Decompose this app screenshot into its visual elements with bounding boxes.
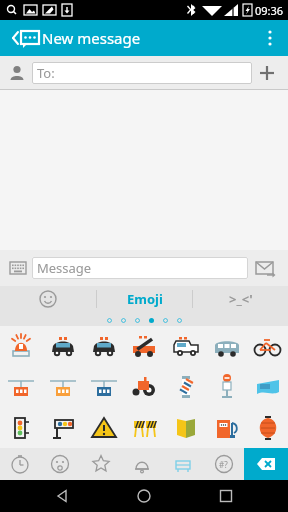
button[interactable]: Emoji 5 — [206, 326, 247, 366]
button[interactable]: Emoji — [97, 286, 192, 312]
button[interactable]: Recent — [0, 448, 40, 480]
button[interactable]: Symbols — [203, 448, 244, 480]
button[interactable]: Emoji 12 — [206, 366, 247, 407]
button[interactable]: Emoji 19 — [206, 407, 247, 448]
button[interactable]: Emoji 10 — [124, 366, 165, 407]
button[interactable]: More options — [252, 20, 288, 56]
button[interactable]: Recents — [206, 480, 246, 512]
button[interactable]: Delete — [244, 448, 288, 480]
button[interactable]: Emoji 14 — [0, 407, 42, 448]
button[interactable]: Home — [124, 480, 164, 512]
button[interactable]: Emoji 8 — [42, 366, 83, 407]
button[interactable]: Emoji 3 — [124, 326, 165, 366]
button[interactable]: Emoji 0 — [0, 326, 42, 366]
staticText: New message — [42, 28, 141, 48]
button[interactable]: Emoji 16 — [83, 407, 124, 448]
staticText: Emoji — [127, 290, 163, 308]
button[interactable]: Message — [32, 257, 248, 279]
button[interactable]: Emoji 7 — [0, 366, 42, 407]
button[interactable]: Emoji 1 — [42, 326, 83, 366]
button[interactable]: >_<' — [193, 286, 288, 312]
button[interactable]: Animals — [80, 448, 121, 480]
button[interactable]: Emoji 2 — [83, 326, 124, 366]
button[interactable]: Add recipient — [252, 58, 282, 88]
button[interactable]: Emoji 9 — [83, 366, 124, 407]
staticText: To: — [37, 64, 55, 82]
button[interactable]: Emoji 15 — [42, 407, 83, 448]
staticText: 09:36 — [255, 3, 284, 18]
staticText: >_<' — [229, 290, 253, 308]
button[interactable]: Emoji 11 — [165, 366, 206, 407]
button[interactable]: Emoji 20 — [247, 407, 288, 448]
button[interactable]: Back — [6, 20, 141, 56]
button[interactable]: Keyboard — [6, 256, 30, 280]
staticText: Message — [37, 259, 92, 277]
staticText: #? — [219, 459, 228, 470]
button[interactable]: Emoji 13 — [247, 366, 288, 407]
button[interactable]: Emoji 17 — [124, 407, 165, 448]
button[interactable]: Back — [42, 480, 82, 512]
button[interactable]: Emoji 4 — [165, 326, 206, 366]
button[interactable]: Emoji 6 — [247, 326, 288, 366]
button[interactable]: Emoji 18 — [165, 407, 206, 448]
button[interactable]: Smileys — [40, 448, 80, 480]
button[interactable]: To: — [32, 62, 252, 84]
button[interactable]: Recent emoji — [0, 286, 96, 312]
button[interactable]: Travel — [162, 448, 203, 480]
button[interactable]: Objects — [121, 448, 162, 480]
button[interactable]: Send — [248, 251, 282, 285]
